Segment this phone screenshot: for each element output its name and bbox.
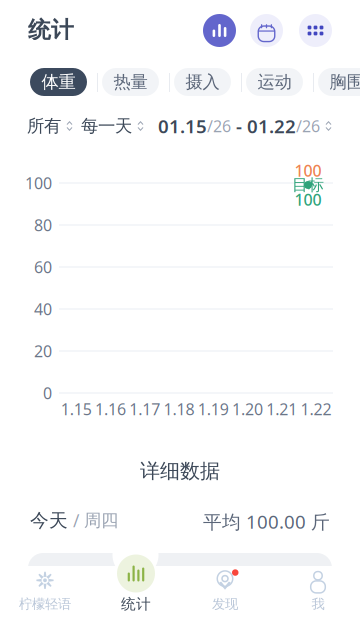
button[interactable]: 摄入 (174, 68, 231, 96)
staticText: 运动 (257, 71, 291, 93)
staticText: 1.22 (300, 398, 331, 420)
staticText: 1.20 (232, 398, 263, 420)
button[interactable]: 热量 (102, 68, 159, 96)
staticText: / (68, 509, 84, 532)
staticText: 0 (43, 382, 52, 404)
staticText: 每一天 (81, 115, 132, 137)
staticText: 胸围 (329, 71, 360, 93)
staticText: 100 (25, 172, 52, 194)
staticText: 1.19 (198, 398, 229, 420)
staticText: 周四 (84, 510, 118, 531)
staticText: 我 (311, 596, 324, 612)
button[interactable]: 所有 (27, 114, 73, 138)
staticText: - (231, 114, 247, 138)
staticText: 所有 (27, 115, 61, 137)
staticText: 01.22 (247, 114, 296, 138)
staticText: 柠檬轻语 (19, 596, 71, 612)
button[interactable]: 胸围 (318, 68, 360, 96)
staticText: 目标 (292, 175, 324, 195)
staticText: 1.16 (95, 398, 126, 420)
staticText: 100 (294, 189, 321, 210)
button[interactable]: 图表 (203, 14, 236, 47)
staticText: 01.15 (158, 114, 207, 138)
staticText: /26 (207, 115, 231, 137)
staticText: 平均 100.00 斤 (203, 509, 330, 534)
button[interactable]: 运动 (246, 68, 303, 96)
staticText: 详细数据 (140, 459, 220, 483)
staticText: 1.17 (129, 398, 160, 420)
staticText: 80 (34, 214, 52, 236)
staticText: 今天 (30, 509, 68, 532)
staticText: 40 (34, 298, 52, 320)
button[interactable]: 发现 (185, 563, 265, 619)
button[interactable]: 更多 (299, 14, 332, 47)
button[interactable]: 日历 (250, 14, 283, 47)
staticText: 1.15 (61, 398, 92, 420)
button[interactable]: 体重 (30, 68, 87, 96)
staticText: /26 (296, 115, 320, 137)
button[interactable]: 我 (278, 563, 358, 619)
button[interactable]: 统计 (96, 554, 176, 616)
staticText: 1.18 (163, 398, 194, 420)
button[interactable]: 每一天 (81, 114, 144, 138)
staticText: 20 (34, 340, 52, 362)
staticText: 1.21 (266, 398, 297, 420)
staticText: 体重 (41, 71, 75, 93)
staticText: 发现 (212, 596, 238, 612)
button[interactable]: 柠檬轻语 (5, 563, 85, 619)
button[interactable]: 01.15 (158, 114, 332, 138)
staticText: 60 (34, 256, 52, 278)
staticText: 统计 (121, 595, 151, 613)
staticText: 摄入 (185, 71, 219, 93)
staticText: 统计 (28, 16, 74, 44)
staticText: 热量 (113, 71, 147, 93)
staticText: 100 (294, 160, 321, 181)
